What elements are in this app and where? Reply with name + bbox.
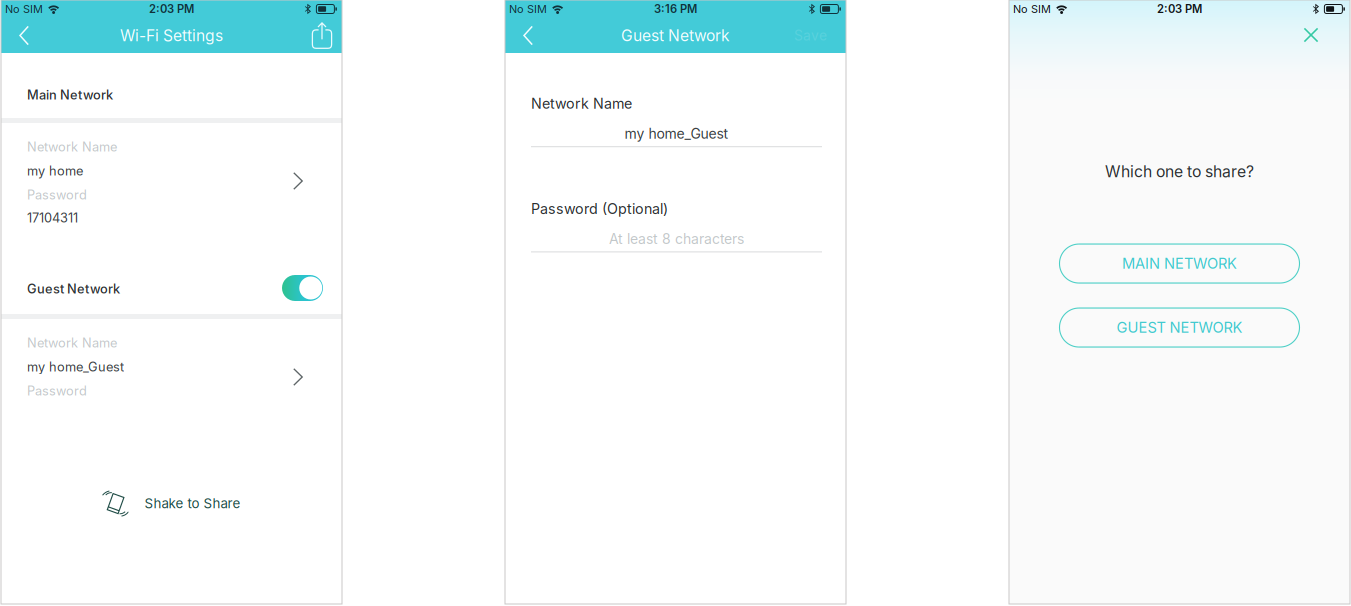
staticText: Network Name [27, 139, 117, 154]
staticText: Network Name [531, 95, 632, 112]
staticText: 17104311 [27, 210, 78, 225]
button[interactable]: Shake to Share [96, 485, 246, 522]
button[interactable]: Share [307, 18, 337, 53]
staticText: my home_Guest [27, 359, 124, 374]
staticText: Guest Network [621, 26, 730, 45]
staticText: Network Name [27, 335, 117, 350]
staticText: No SIM [509, 2, 547, 16]
staticText: No SIM [1013, 2, 1051, 16]
staticText: Password [27, 187, 87, 202]
button[interactable]: GUEST NETWORK [1059, 308, 1299, 347]
staticText: 3:16 PM [654, 2, 697, 16]
staticText: 2:03 PM [149, 2, 194, 16]
staticText: Password (Optional) [531, 200, 668, 217]
staticText: my home [27, 163, 83, 178]
staticText: Shake to Share [144, 495, 240, 511]
button[interactable]: Close [1294, 18, 1328, 52]
button[interactable]: MAIN NETWORK [1059, 244, 1299, 283]
button[interactable]: Save [784, 18, 841, 53]
staticText: At least 8 characters [609, 230, 744, 247]
staticText: Save [794, 27, 827, 44]
button[interactable]: Back [9, 18, 39, 53]
staticText: GUEST NETWORK [1116, 319, 1242, 336]
button[interactable]: Guest Network [282, 275, 323, 301]
staticText: MAIN NETWORK [1122, 255, 1237, 272]
staticText: Main Network [27, 87, 113, 102]
button[interactable]: Network Name [1, 123, 342, 234]
staticText: Wi-Fi Settings [120, 26, 223, 45]
staticText: Which one to share? [1105, 162, 1254, 181]
staticText: 2:03 PM [1157, 2, 1202, 16]
staticText: No SIM [5, 2, 43, 16]
button[interactable]: Back [513, 18, 543, 53]
staticText: Guest Network [27, 281, 120, 296]
staticText: my home_Guest [624, 125, 728, 142]
button[interactable]: Network Name [1, 319, 342, 407]
staticText: Password [27, 383, 87, 398]
